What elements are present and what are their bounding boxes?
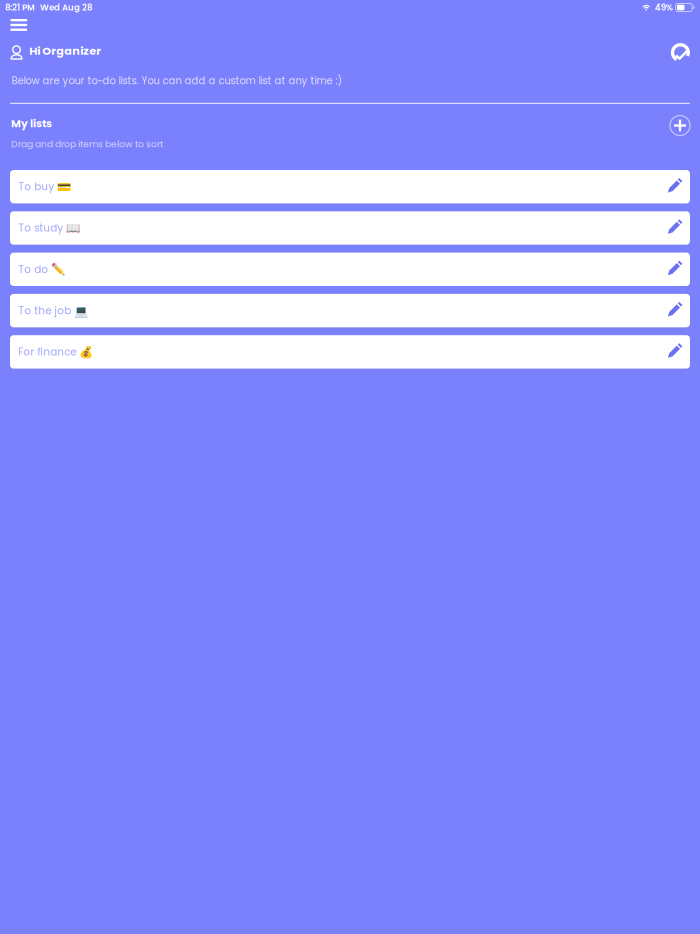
- staticText: Drag and drop items below to sort: [11, 138, 163, 150]
- button[interactable]: To the job: [10, 294, 690, 327]
- staticText: To the job: [18, 303, 71, 318]
- button[interactable]: For finance: [10, 335, 690, 369]
- button[interactable]: To do: [10, 253, 690, 286]
- staticText: 8:21 PM: [5, 1, 35, 13]
- staticText: 💻: [71, 303, 88, 319]
- staticText: To do: [18, 262, 48, 276]
- button[interactable]: To study: [10, 211, 690, 245]
- staticText: Hi Organizer: [29, 43, 101, 59]
- button[interactable]: Add list: [670, 113, 700, 135]
- staticText: Below are your to-do lists. You can add …: [11, 74, 341, 88]
- staticText: To buy: [18, 179, 54, 194]
- staticText: To study: [18, 221, 63, 235]
- button[interactable]: App logo: [671, 43, 700, 62]
- staticText: Wed Aug 28: [40, 1, 92, 13]
- button[interactable]: To buy: [10, 170, 690, 203]
- staticText: 💰: [76, 344, 93, 360]
- staticText: For finance: [18, 345, 76, 359]
- staticText: My lists: [11, 116, 52, 131]
- staticText: ✏️: [48, 261, 65, 277]
- button[interactable]: Menu: [0, 15, 36, 35]
- staticText: 💳: [54, 179, 71, 195]
- staticText: 49%: [655, 1, 673, 13]
- staticText: 📖: [63, 220, 80, 236]
